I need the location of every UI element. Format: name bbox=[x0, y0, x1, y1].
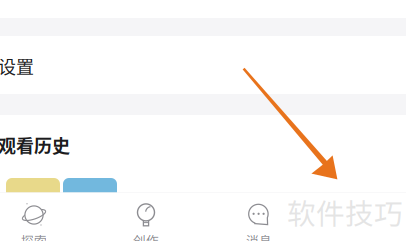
staticText: 软件技巧 bbox=[287, 191, 403, 233]
button[interactable]: 设置 bbox=[0, 37, 404, 95]
staticText: 消息 bbox=[246, 231, 272, 241]
staticText: 创作 bbox=[133, 231, 159, 241]
button[interactable]: 创作 bbox=[91, 202, 201, 241]
button[interactable]: 消息 bbox=[204, 202, 314, 241]
button[interactable]: History item 2 bbox=[63, 178, 117, 218]
button[interactable]: 探索 bbox=[0, 202, 89, 241]
staticText: 观看历史 bbox=[0, 132, 70, 158]
button[interactable]: History item 1 bbox=[6, 178, 60, 218]
staticText: 设置 bbox=[0, 53, 34, 79]
staticText: 探索 bbox=[21, 231, 47, 241]
